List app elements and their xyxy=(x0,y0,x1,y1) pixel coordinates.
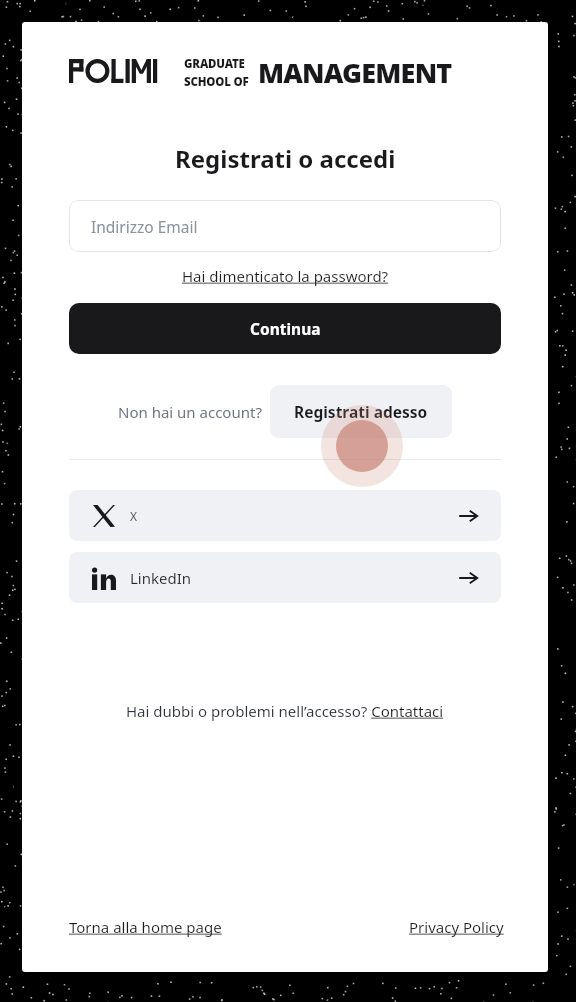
button[interactable]: Torna alla home page xyxy=(69,914,222,940)
staticText: Continua xyxy=(250,318,321,339)
staticText: MANAGEMENT xyxy=(258,54,452,88)
staticText: Torna alla home page xyxy=(69,917,222,937)
button[interactable]: Accedi con LinkedIn xyxy=(69,552,501,603)
staticText: Hai dimenticato la password? xyxy=(182,266,389,286)
button[interactable]: Hai dimenticato la password? xyxy=(178,264,393,288)
staticText: SCHOOL OF xyxy=(184,74,249,86)
other: Continua xyxy=(457,567,479,589)
staticText: LinkedIn xyxy=(130,568,192,588)
button[interactable]: Hai dubbi o problemi nell’accesso? Conta… xyxy=(122,699,448,723)
staticText: X xyxy=(130,508,138,524)
button[interactable]: Privacy Policy xyxy=(409,914,504,940)
button[interactable]: Continua xyxy=(69,303,501,354)
other: Continua xyxy=(457,505,479,527)
button[interactable]: Registrati adesso xyxy=(270,385,452,438)
button[interactable]: Accedi con X xyxy=(69,490,501,541)
staticText: Non hai un account? xyxy=(118,402,262,422)
staticText: Hai dubbi o problemi nell’accesso? Conta… xyxy=(126,701,444,721)
staticText: Indirizzo Email xyxy=(91,216,198,237)
button[interactable]: Indirizzo Email xyxy=(69,200,501,252)
staticText: GRADUATE xyxy=(184,56,245,72)
staticText: Registrati o accedi xyxy=(175,142,396,175)
staticText: Registrati adesso xyxy=(294,401,428,422)
staticText: Privacy Policy xyxy=(409,917,504,937)
